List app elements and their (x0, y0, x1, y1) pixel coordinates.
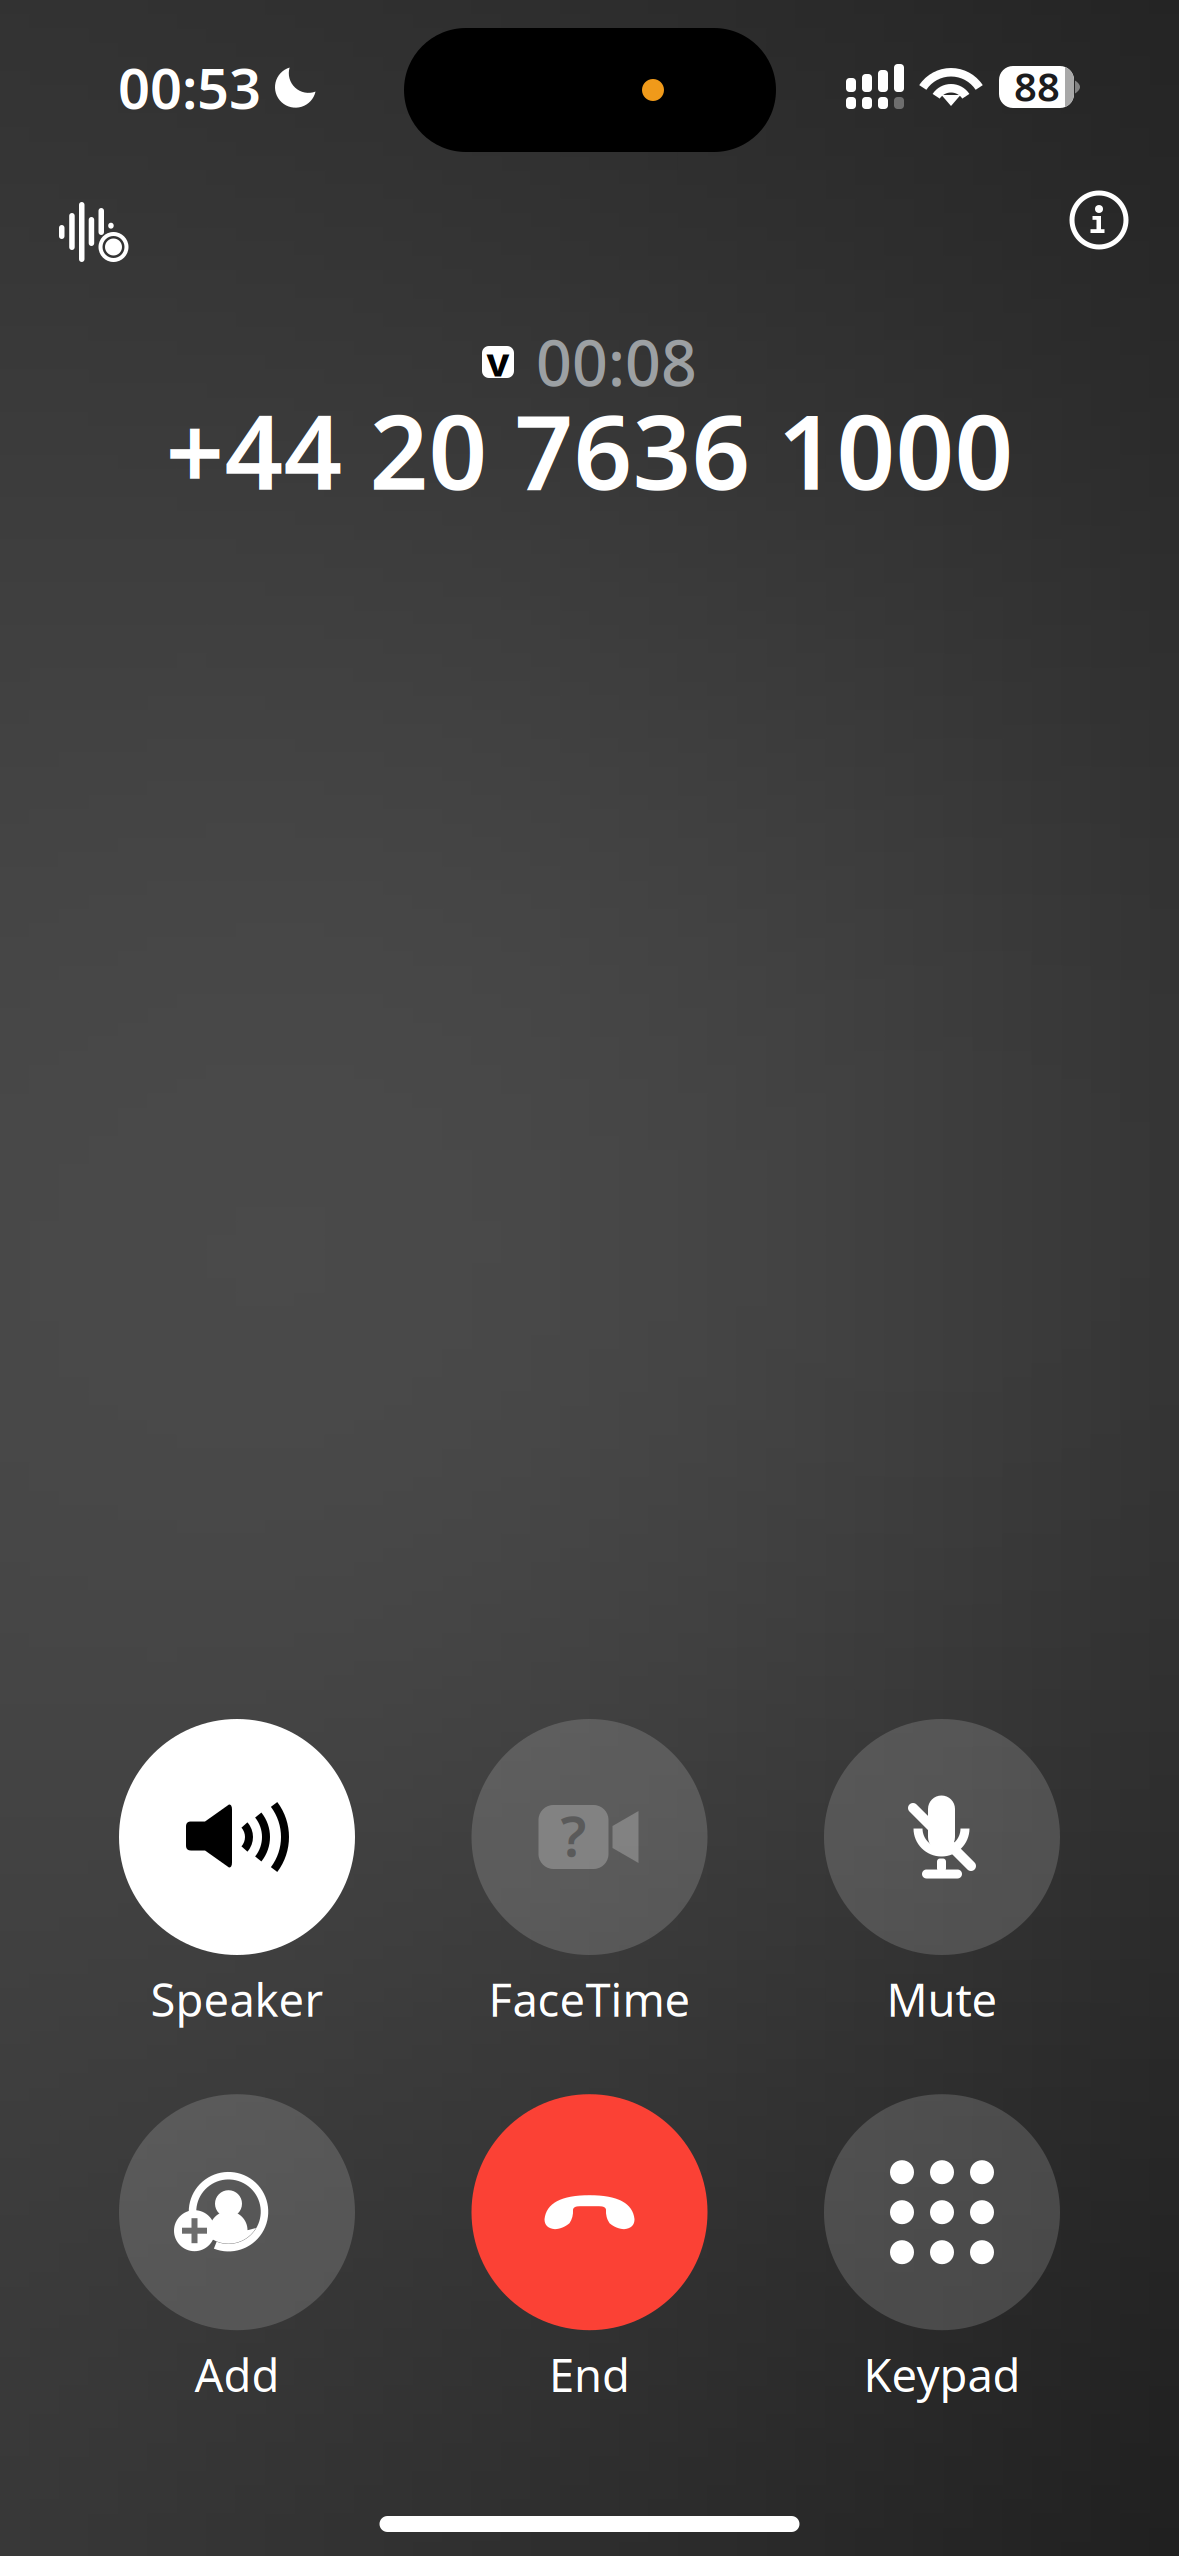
button[interactable]: Speaker (61, 1719, 413, 2029)
button[interactable]: Keypad (766, 2094, 1118, 2404)
button[interactable]: ? (413, 1719, 766, 2029)
staticText: ? (560, 1798, 586, 1872)
button[interactable]: Call details (1050, 171, 1148, 269)
button[interactable]: Mute (766, 1719, 1118, 2029)
staticText: FaceTime (488, 1969, 690, 2029)
staticText: Mute (886, 1969, 997, 2029)
staticText: Speaker (150, 1969, 323, 2029)
staticText: 00:08 (536, 320, 697, 404)
button[interactable]: End (413, 2094, 766, 2404)
staticText: 00:53 (118, 50, 261, 124)
staticText: End (549, 2344, 630, 2404)
button[interactable]: Add (61, 2094, 413, 2404)
staticText: Add (194, 2344, 279, 2404)
staticText: +44 20 7636 1000 (165, 382, 1013, 518)
staticText: Keypad (863, 2344, 1020, 2404)
staticText: v (486, 334, 509, 387)
button[interactable]: Live voicemail (37, 180, 151, 284)
staticText: 88 (1014, 59, 1060, 112)
